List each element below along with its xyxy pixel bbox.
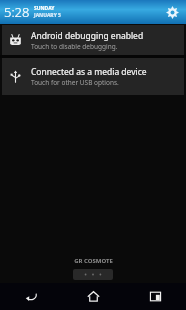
staticText: Touch for other USB options. [31,78,119,87]
staticText: 5:28 [4,3,30,21]
staticText: Android debugging enabled [31,30,144,42]
button[interactable]: Android debugging enabled [2,25,184,55]
button[interactable]: Recent apps [124,283,186,310]
staticText: JANUARY 5 [34,12,61,19]
button[interactable]: Clear all notifications [73,269,113,280]
button[interactable]: Back [0,283,62,310]
button[interactable]: Settings [162,2,183,23]
staticText: Connected as a media device [31,66,147,78]
staticText: GR COSMOTE [74,257,113,265]
staticText: SUNDAY [34,5,55,12]
staticText: Touch to disable debugging. [31,42,118,51]
button[interactable]: Home [62,283,124,310]
button[interactable]: Connected as a media device [2,58,184,95]
